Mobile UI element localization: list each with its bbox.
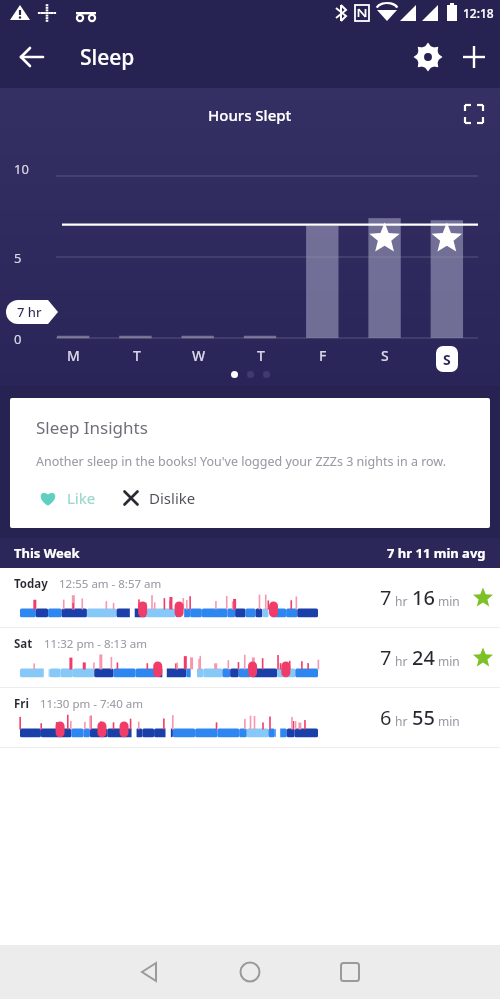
button[interactable]: Back bbox=[8, 33, 56, 81]
staticText: min bbox=[438, 593, 460, 609]
staticText: Sleep Insights bbox=[36, 416, 148, 439]
button[interactable]: Sat bbox=[0, 628, 500, 687]
staticText: This Week bbox=[14, 544, 80, 562]
staticText: 12:18 bbox=[463, 5, 494, 21]
staticText: T bbox=[257, 346, 265, 365]
button[interactable]: Add bbox=[452, 33, 496, 81]
staticText: min bbox=[438, 653, 460, 669]
staticText: hr bbox=[395, 713, 408, 729]
staticText: 24 bbox=[412, 644, 435, 671]
button[interactable]: Fri bbox=[0, 688, 500, 747]
staticText: S bbox=[381, 346, 389, 365]
staticText: 5 bbox=[14, 249, 22, 267]
staticText: Sat bbox=[14, 636, 33, 652]
staticText: min bbox=[438, 713, 460, 729]
staticText: F bbox=[319, 346, 327, 365]
staticText: Like bbox=[67, 488, 96, 508]
staticText: 0 bbox=[14, 330, 22, 348]
staticText: Fri bbox=[14, 696, 29, 712]
staticText: Sleep bbox=[80, 43, 135, 72]
staticText: 7 bbox=[380, 644, 392, 671]
staticText: Dislike bbox=[149, 488, 196, 508]
button[interactable]: Settings bbox=[404, 33, 452, 81]
staticText: 12:55 am - 8:57 am bbox=[59, 576, 162, 592]
staticText: 7 bbox=[380, 584, 392, 611]
staticText: 7 hr bbox=[17, 303, 42, 321]
staticText: 11:32 pm - 8:13 am bbox=[44, 636, 147, 652]
staticText: 55 bbox=[412, 704, 435, 731]
staticText: 10 bbox=[14, 160, 29, 178]
staticText: S bbox=[443, 350, 451, 369]
staticText: hr bbox=[395, 653, 408, 669]
button[interactable]: Dislike bbox=[120, 484, 198, 512]
staticText: 7 hr 11 min avg bbox=[387, 544, 486, 562]
button[interactable]: Expand chart bbox=[452, 92, 496, 136]
staticText: M bbox=[67, 346, 80, 365]
staticText: hr bbox=[395, 593, 408, 609]
staticText: T bbox=[133, 346, 141, 365]
staticText: Hours Slept bbox=[208, 105, 292, 125]
staticText: W bbox=[192, 346, 206, 365]
staticText: 11:30 pm - 7:40 am bbox=[40, 696, 143, 712]
button[interactable]: Today bbox=[0, 568, 500, 627]
staticText: 16 bbox=[412, 584, 435, 611]
staticText: Another sleep in the books! You've logge… bbox=[36, 453, 447, 470]
button[interactable]: Like bbox=[36, 484, 98, 512]
button[interactable]: Sleep Insights bbox=[10, 398, 490, 528]
staticText: 6 bbox=[380, 704, 392, 731]
staticText: Today bbox=[14, 576, 48, 592]
